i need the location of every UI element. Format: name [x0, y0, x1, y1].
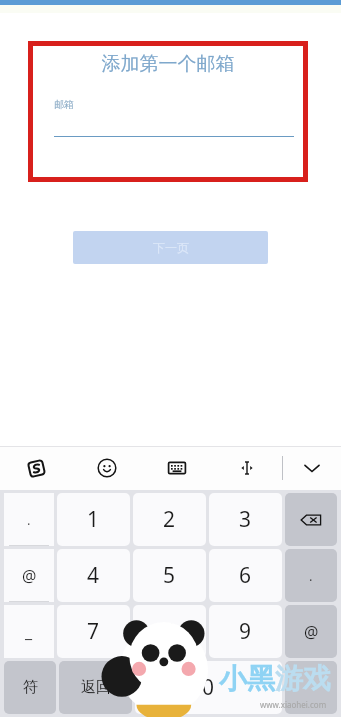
button[interactable]: 返回 [59, 661, 132, 714]
button[interactable]: 9 [209, 605, 282, 658]
staticText: . [309, 567, 313, 585]
staticText: 5 [163, 561, 176, 590]
button[interactable]: 7 [57, 605, 130, 658]
button[interactable]: 符 [4, 661, 56, 714]
staticText: 邮箱 [54, 98, 74, 111]
button[interactable]: 1 [57, 493, 130, 546]
staticText: 下一页 [153, 240, 189, 255]
staticText: _ [25, 621, 33, 643]
button[interactable]: Backspace [285, 493, 337, 546]
staticText: 2 [163, 505, 176, 534]
staticText: 符 [23, 678, 38, 697]
staticText: www.xiaohei.com [260, 699, 327, 710]
button[interactable]: . [4, 493, 54, 546]
staticText: 7 [87, 617, 100, 646]
staticText: 3 [239, 505, 252, 534]
staticText: 返回 [81, 678, 111, 697]
staticText: @ [22, 565, 37, 587]
staticText: 添加第一个邮箱 [28, 52, 308, 76]
button[interactable]: _ [4, 605, 54, 658]
button[interactable]: 2 [133, 493, 206, 546]
button[interactable]: Sogou input [0, 446, 72, 490]
button[interactable]: Emoji [72, 446, 142, 490]
button[interactable]: 4 [57, 549, 130, 602]
button[interactable]: . [285, 549, 337, 602]
button[interactable]: 6 [209, 549, 282, 602]
staticText: . [27, 511, 31, 529]
button[interactable]: @ [285, 605, 337, 658]
staticText: 小黑 [219, 661, 275, 696]
button[interactable]: 8 [133, 605, 206, 658]
staticText: 6 [239, 561, 252, 590]
button[interactable] [285, 661, 337, 714]
staticText: 4 [87, 561, 100, 590]
button[interactable]: Keyboard layout [142, 446, 212, 490]
staticText: 游戏 [275, 661, 331, 696]
staticText: 9 [239, 617, 252, 646]
staticText: 8 [163, 617, 176, 646]
staticText: 0 [202, 673, 215, 702]
button[interactable]: Hide keyboard [283, 446, 341, 490]
button[interactable]: 3 [209, 493, 282, 546]
button[interactable]: 5 [133, 549, 206, 602]
staticText: 1 [87, 505, 100, 534]
button[interactable]: 0 [135, 661, 282, 714]
staticText: @ [304, 621, 319, 643]
button[interactable]: Move cursor [212, 446, 282, 490]
button[interactable]: @ [4, 549, 54, 602]
